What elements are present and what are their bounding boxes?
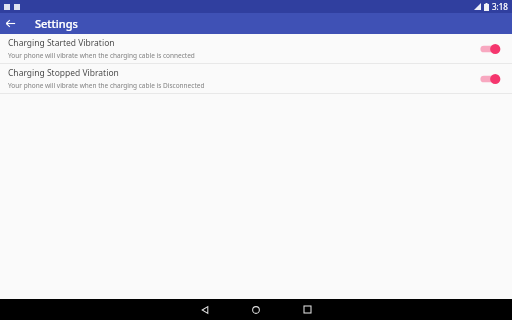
staticText: Charging Started Vibration [8, 37, 115, 49]
staticText: 3:18 [492, 1, 508, 12]
button[interactable]: Toggle [478, 71, 502, 87]
button[interactable]: Back [188, 299, 222, 320]
staticText: Your phone will vibrate when the chargin… [8, 81, 205, 90]
button[interactable]: Charging Stopped Vibration [0, 64, 512, 93]
button[interactable]: Charging Started Vibration [0, 34, 512, 63]
staticText: Settings [35, 16, 78, 31]
button[interactable]: Back [0, 13, 21, 34]
button[interactable]: Toggle [478, 41, 502, 57]
staticText: Your phone will vibrate when the chargin… [8, 51, 195, 60]
button[interactable]: Recent apps [290, 299, 324, 320]
button[interactable]: Home [239, 299, 273, 320]
staticText: Charging Stopped Vibration [8, 67, 119, 79]
